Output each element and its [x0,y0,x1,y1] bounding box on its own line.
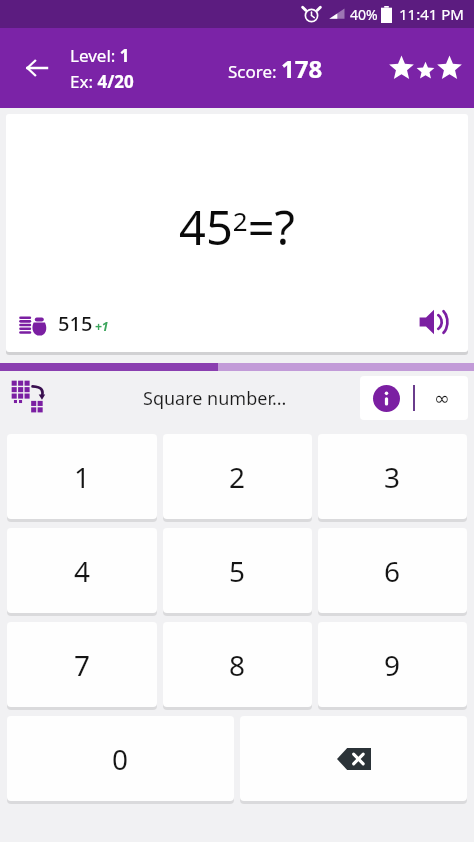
staticText: 2 [229,458,246,496]
button[interactable]: Topic [8,377,50,419]
button[interactable]: Back [14,45,60,91]
staticText: 8 [229,646,246,684]
button[interactable]: Info [360,376,413,420]
button[interactable]: Stars [389,56,462,81]
staticText: Level: 1 [70,44,130,67]
button[interactable]: Backspace [240,716,467,801]
staticText: Ex: 4/20 [70,70,134,93]
staticText: 40% [350,5,378,24]
button[interactable]: Square number... [143,386,287,411]
button[interactable]: 4 [7,528,157,613]
staticText: 3 [384,458,401,496]
staticText: 1 [74,458,91,496]
staticText: 452=? [179,195,295,259]
button[interactable]: 8 [163,622,312,707]
button[interactable]: 7 [7,622,157,707]
staticText: 5 [229,552,246,590]
button[interactable]: 3 [318,434,467,519]
button[interactable]: 515 [18,308,109,338]
button[interactable]: 1 [7,434,157,519]
staticText: ∞ [434,387,450,409]
button[interactable]: 452=? [6,114,468,352]
staticText: Score: 178 [228,52,323,85]
staticText: 7 [74,646,91,684]
staticText: 9 [384,646,401,684]
button[interactable]: Unlimited lives [415,376,468,420]
staticText: +1 [95,318,109,334]
button[interactable]: 0 [7,716,234,801]
button[interactable]: 5 [163,528,312,613]
staticText: 0 [112,740,129,778]
button[interactable]: 6 [318,528,467,613]
button[interactable]: 2 [163,434,312,519]
staticText: 515 [58,310,93,337]
staticText: 11:41 PM [399,4,464,24]
button[interactable]: 9 [318,622,467,707]
staticText: 6 [384,552,401,590]
staticText: 4 [74,552,91,590]
button[interactable]: Speak question [410,298,458,346]
